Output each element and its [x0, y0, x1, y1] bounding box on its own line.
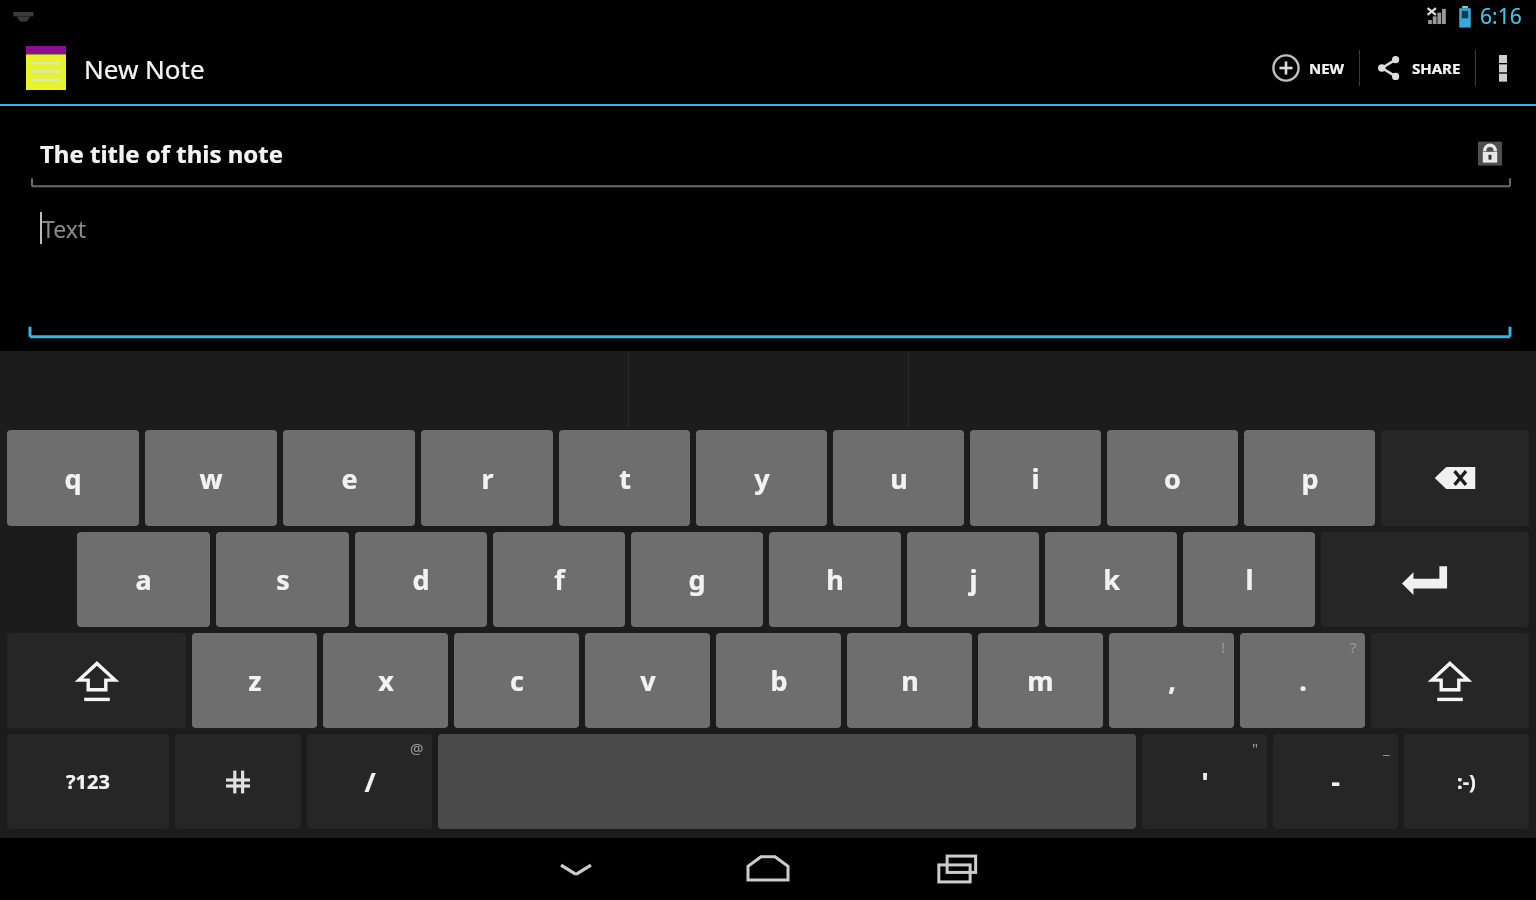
- staticText: NEW: [1309, 58, 1345, 78]
- staticText: :-): [1457, 768, 1476, 795]
- button[interactable]: Home: [720, 841, 816, 897]
- button[interactable]: Shift: [7, 633, 186, 728]
- button[interactable]: :-): [1404, 734, 1529, 829]
- button[interactable]: Language: [175, 734, 301, 829]
- button[interactable]: Enter: [1321, 532, 1529, 627]
- button[interactable]: Recent apps: [912, 841, 1008, 897]
- staticText: m: [1027, 662, 1054, 699]
- button[interactable]: SHARE: [1360, 32, 1475, 104]
- button[interactable]: b: [716, 633, 841, 728]
- staticText: l: [1245, 561, 1254, 598]
- button[interactable]: a: [77, 532, 210, 627]
- button[interactable]: ?123: [7, 734, 169, 829]
- staticText: ?123: [66, 768, 110, 795]
- button[interactable]: c: [454, 633, 579, 728]
- staticText: ": [1252, 738, 1259, 758]
- staticText: ?: [1350, 637, 1357, 657]
- button[interactable]: m: [978, 633, 1103, 728]
- button[interactable]: x: [323, 633, 448, 728]
- staticText: b: [770, 662, 788, 699]
- staticText: The title of this note: [40, 137, 284, 170]
- button[interactable]: ,: [1109, 633, 1234, 728]
- button[interactable]: d: [355, 532, 487, 627]
- button[interactable]: t: [559, 430, 690, 526]
- staticText: /: [364, 763, 376, 800]
- button[interactable]: /: [307, 734, 432, 829]
- staticText: z: [248, 662, 262, 699]
- button[interactable]: .: [1240, 633, 1365, 728]
- staticText: p: [1301, 460, 1319, 497]
- staticText: k: [1103, 561, 1120, 598]
- staticText: g: [688, 561, 706, 598]
- button[interactable]: f: [493, 532, 625, 627]
- staticText: i: [1031, 460, 1040, 497]
- staticText: r: [481, 460, 494, 497]
- staticText: u: [890, 460, 908, 497]
- staticText: w: [199, 460, 223, 497]
- staticText: q: [64, 460, 82, 497]
- button[interactable]: r: [421, 430, 553, 526]
- staticText: New Note: [84, 51, 205, 86]
- staticText: c: [510, 662, 524, 699]
- staticText: e: [341, 460, 358, 497]
- button[interactable]: w: [145, 430, 277, 526]
- button[interactable]: h: [769, 532, 901, 627]
- button[interactable]: k: [1045, 532, 1177, 627]
- button[interactable]: NEW: [1257, 32, 1359, 104]
- staticText: v: [640, 662, 656, 699]
- staticText: j: [969, 561, 978, 598]
- staticText: @: [410, 738, 424, 758]
- button[interactable]: -: [1273, 734, 1398, 829]
- staticText: !: [1221, 637, 1226, 657]
- button[interactable]: Hide keyboard: [528, 841, 624, 897]
- button[interactable]: z: [192, 633, 317, 728]
- button[interactable]: Shift: [1371, 633, 1529, 728]
- staticText: y: [754, 460, 770, 497]
- staticText: h: [826, 561, 844, 598]
- staticText: _: [1383, 738, 1390, 758]
- button[interactable]: p: [1244, 430, 1375, 526]
- button[interactable]: s: [216, 532, 349, 627]
- button[interactable]: u: [833, 430, 964, 526]
- button[interactable]: ': [1142, 734, 1267, 829]
- staticText: ,: [1168, 662, 1176, 699]
- button[interactable]: i: [970, 430, 1101, 526]
- button[interactable]: More options: [1476, 32, 1530, 104]
- staticText: d: [412, 561, 430, 598]
- staticText: x: [378, 662, 394, 699]
- staticText: o: [1164, 460, 1181, 497]
- button[interactable]: e: [283, 430, 415, 526]
- button[interactable]: Backspace: [1381, 430, 1529, 526]
- staticText: t: [619, 460, 631, 497]
- button[interactable]: j: [907, 532, 1039, 627]
- staticText: 6:16: [1480, 2, 1522, 31]
- staticText: Text: [42, 213, 87, 244]
- button[interactable]: y: [696, 430, 827, 526]
- staticText: SHARE: [1412, 58, 1461, 78]
- staticText: n: [901, 662, 919, 699]
- staticText: ': [1201, 763, 1209, 800]
- button[interactable]: o: [1107, 430, 1238, 526]
- staticText: .: [1299, 662, 1307, 699]
- button[interactable]: q: [7, 430, 139, 526]
- button[interactable]: l: [1183, 532, 1315, 627]
- staticText: s: [276, 561, 290, 598]
- button[interactable]: v: [585, 633, 710, 728]
- staticText: f: [554, 561, 565, 598]
- button[interactable]: Lock note: [1474, 137, 1536, 169]
- staticText: -: [1331, 763, 1340, 800]
- staticText: a: [135, 561, 152, 598]
- button[interactable]: n: [847, 633, 972, 728]
- button[interactable]: g: [631, 532, 763, 627]
